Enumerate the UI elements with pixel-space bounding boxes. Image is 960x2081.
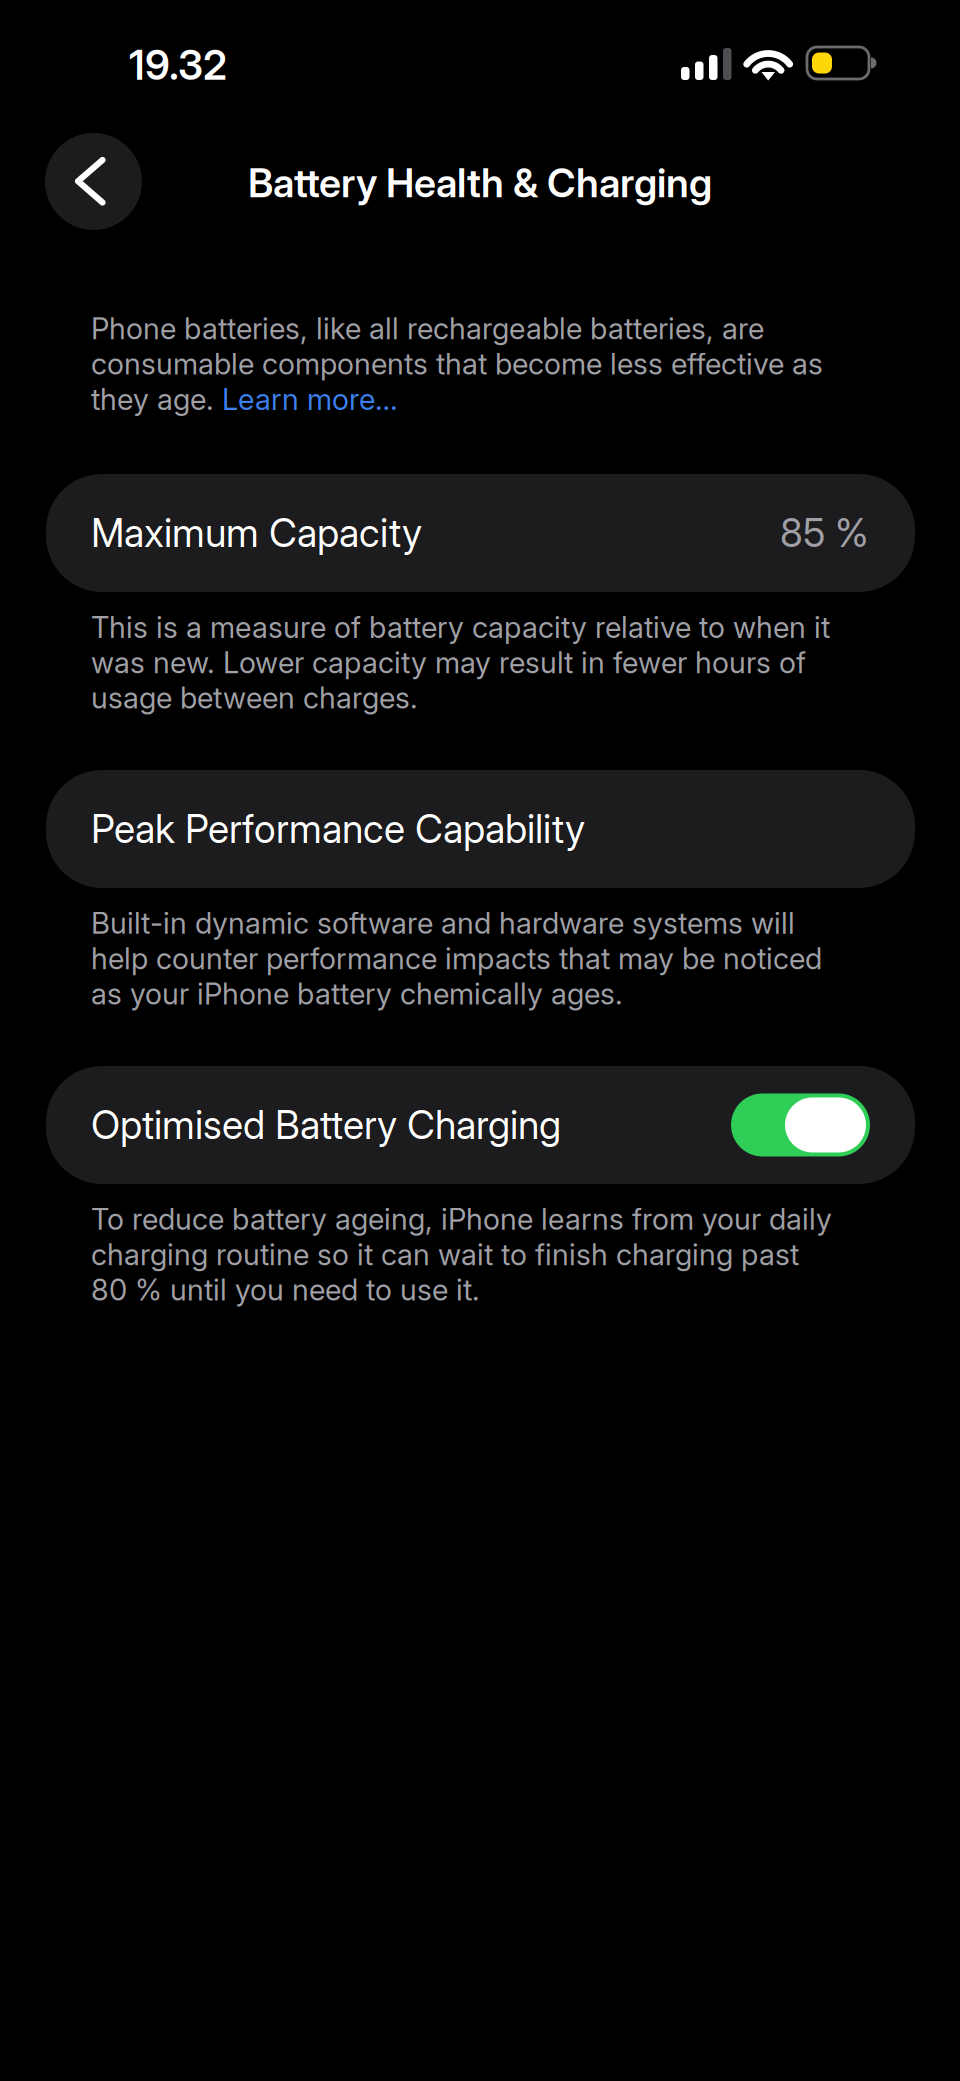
staticText: consumable components that become less e… <box>91 346 823 382</box>
staticText: This is a measure of battery capacity re… <box>91 610 830 716</box>
staticText: they age. <box>91 382 222 417</box>
staticText: Built-in dynamic software and hardware s… <box>91 906 822 1012</box>
button[interactable]: Back <box>45 133 142 230</box>
staticText: Phone batteries, like all rechargeable b… <box>91 311 764 346</box>
staticText: Learn more… <box>222 382 398 417</box>
button[interactable]: Maximum Capacity <box>46 474 915 592</box>
button[interactable]: Peak Performance Capability <box>46 770 915 888</box>
staticText: To reduce battery ageing, iPhone learns … <box>91 1202 832 1308</box>
staticText: 19.32 <box>129 40 227 90</box>
staticText: Battery Health & Charging <box>248 159 712 207</box>
staticText: 85 % <box>780 510 869 556</box>
button[interactable]: Optimised Battery Charging <box>731 1093 870 1156</box>
button[interactable]: Learn more… <box>222 382 398 417</box>
staticText: Peak Performance Capability <box>91 806 585 852</box>
staticText: Maximum Capacity <box>91 510 422 556</box>
staticText: Optimised Battery Charging <box>91 1102 561 1148</box>
